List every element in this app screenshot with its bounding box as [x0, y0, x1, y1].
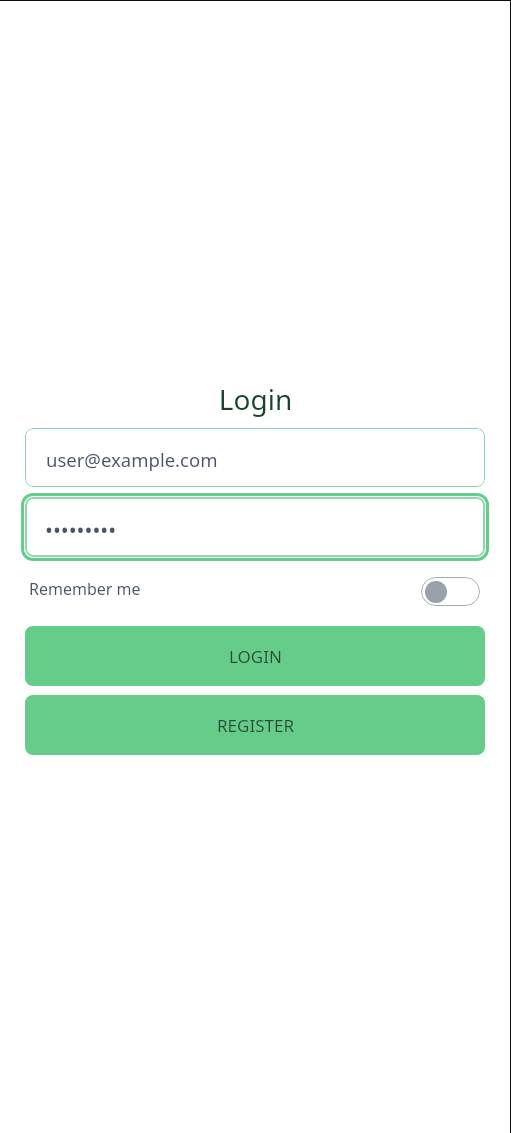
button[interactable]: LOGIN	[25, 626, 485, 686]
staticText: Remember me	[29, 578, 141, 600]
staticText: •••••••••	[45, 516, 117, 545]
staticText: Login	[0, 380, 511, 418]
button[interactable]: REGISTER	[25, 695, 485, 755]
button[interactable]: •••••••••	[25, 497, 485, 557]
staticText: LOGIN	[229, 645, 282, 668]
staticText: REGISTER	[217, 714, 294, 737]
button[interactable]: Remember me, off	[421, 577, 480, 606]
button[interactable]: user@example.com	[25, 428, 485, 487]
staticText: user@example.com	[46, 447, 218, 472]
